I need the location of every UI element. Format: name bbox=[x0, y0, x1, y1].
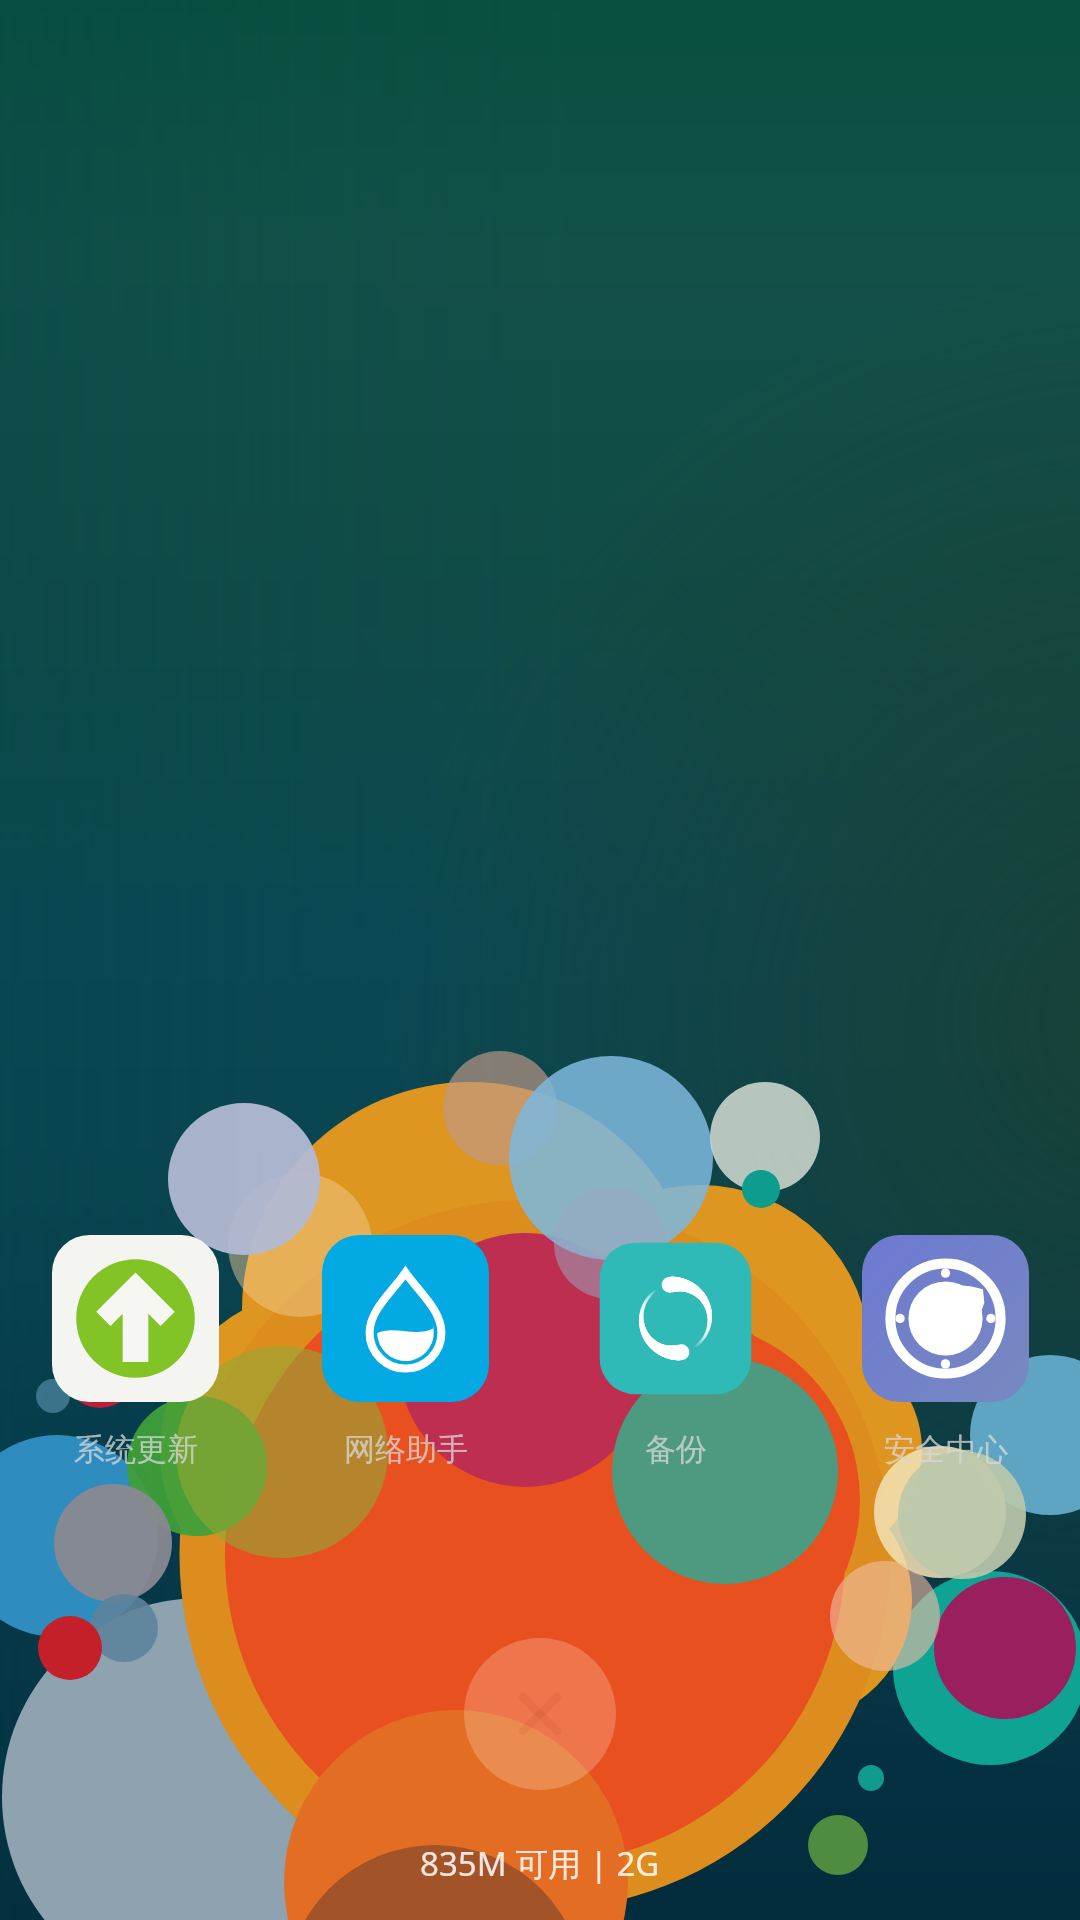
button[interactable]: 安全中心 bbox=[862, 1235, 1029, 1469]
staticText: 网络助手 bbox=[344, 1430, 468, 1469]
staticText: 系统更新 bbox=[74, 1430, 198, 1469]
button[interactable]: 网络助手 bbox=[322, 1235, 489, 1469]
button[interactable]: 备份 bbox=[592, 1235, 759, 1469]
staticText: 835M 可用 | 2G bbox=[420, 1841, 660, 1886]
staticText: 安全中心 bbox=[884, 1430, 1008, 1469]
staticText: 备份 bbox=[645, 1430, 707, 1469]
button[interactable]: 系统更新 bbox=[52, 1235, 219, 1469]
